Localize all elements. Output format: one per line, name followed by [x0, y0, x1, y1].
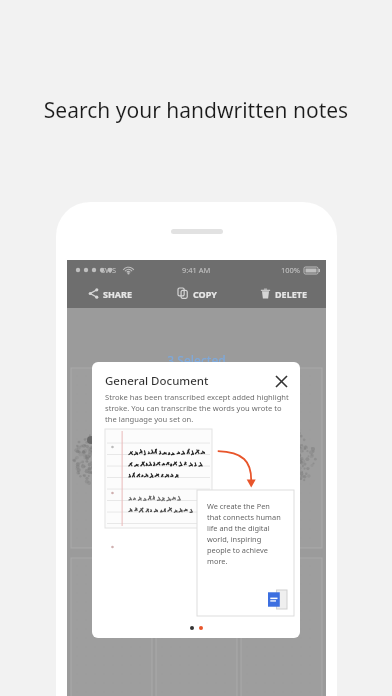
staticText: SHARE [103, 288, 133, 300]
staticText: SWS [101, 265, 117, 275]
staticText: Stroke has been transcribed except added… [105, 392, 289, 424]
staticText: 9:41 AM [182, 265, 211, 275]
button[interactable]: We create the Pen that connects human li… [197, 490, 294, 616]
staticText: DELETE [275, 288, 307, 300]
button[interactable]: Close [270, 370, 292, 392]
button[interactable]: COPY [154, 279, 240, 308]
button[interactable]: DELETE [240, 279, 326, 308]
staticText: COPY [193, 288, 217, 300]
staticText: 100% [281, 265, 301, 275]
button[interactable]: Page 2 [199, 626, 203, 630]
staticText: 3 Selected [67, 352, 326, 368]
button[interactable]: Page 1 [190, 626, 194, 630]
button[interactable]: SHARE [67, 279, 154, 308]
button[interactable] [105, 429, 212, 528]
staticText: General Document [105, 373, 209, 389]
staticText: We create the Pen that connects human li… [207, 501, 284, 566]
staticText: Search your handwritten notes [20, 96, 372, 125]
